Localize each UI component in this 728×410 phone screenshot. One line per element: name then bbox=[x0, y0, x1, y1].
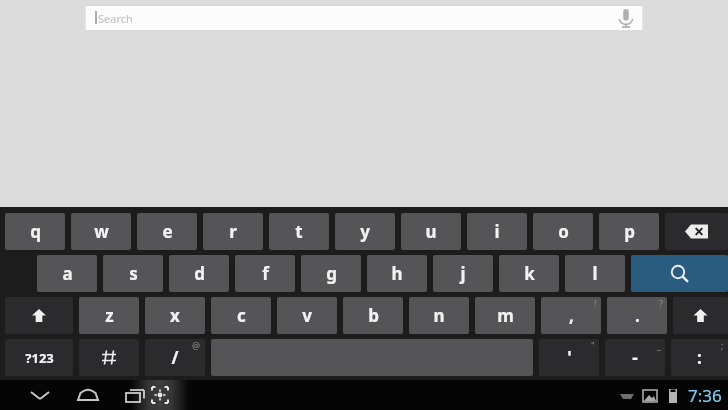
staticText: d bbox=[194, 262, 205, 285]
button[interactable]: a bbox=[37, 255, 97, 292]
button[interactable]: x bbox=[145, 297, 205, 334]
staticText: ! bbox=[594, 297, 597, 309]
button[interactable]: j bbox=[433, 255, 493, 292]
button[interactable]: @ bbox=[145, 339, 205, 376]
staticText: ? bbox=[659, 297, 663, 309]
button[interactable]: m bbox=[475, 297, 535, 334]
button[interactable]: z bbox=[79, 297, 139, 334]
staticText: k bbox=[524, 262, 535, 285]
staticText: q bbox=[30, 220, 41, 243]
button[interactable]: Search bbox=[85, 5, 643, 31]
staticText: , bbox=[569, 304, 574, 327]
staticText: 7:36 bbox=[688, 384, 722, 407]
staticText: : bbox=[697, 346, 702, 369]
staticText: j bbox=[460, 262, 466, 285]
button[interactable]: Shift bbox=[673, 297, 728, 334]
staticText: o bbox=[558, 220, 569, 243]
button[interactable]: s bbox=[103, 255, 163, 292]
staticText: v bbox=[302, 304, 312, 327]
staticText: n bbox=[433, 304, 445, 327]
button[interactable]: _ bbox=[605, 339, 665, 376]
button[interactable]: y bbox=[335, 213, 395, 250]
button[interactable]: Switch input method bbox=[131, 380, 189, 410]
staticText: p bbox=[624, 220, 635, 243]
button[interactable]: ! bbox=[541, 297, 601, 334]
button[interactable]: l bbox=[565, 255, 625, 292]
staticText: s bbox=[129, 262, 138, 285]
staticText: b bbox=[368, 304, 379, 327]
staticText: ; bbox=[721, 339, 724, 351]
staticText: . bbox=[635, 304, 640, 327]
button[interactable]: Shift bbox=[5, 297, 73, 334]
button[interactable]: u bbox=[401, 213, 461, 250]
button[interactable]: Voice search bbox=[609, 5, 643, 31]
button[interactable]: c bbox=[211, 297, 271, 334]
button[interactable]: g bbox=[301, 255, 361, 292]
button[interactable]: w bbox=[71, 213, 131, 250]
staticText: g bbox=[326, 262, 337, 285]
staticText: r bbox=[229, 220, 237, 243]
staticText: w bbox=[94, 220, 109, 243]
button[interactable]: k bbox=[499, 255, 559, 292]
button[interactable]: Search bbox=[631, 255, 728, 292]
button[interactable]: ?123 bbox=[5, 339, 73, 376]
button[interactable]: ; bbox=[671, 339, 728, 376]
staticText: m bbox=[497, 304, 514, 327]
staticText: ?123 bbox=[25, 349, 54, 367]
staticText: f bbox=[262, 262, 269, 285]
staticText: @ bbox=[192, 339, 201, 351]
button[interactable]: v bbox=[277, 297, 337, 334]
button[interactable]: Backspace bbox=[665, 213, 728, 250]
button[interactable]: q bbox=[5, 213, 65, 250]
staticText: _ bbox=[657, 339, 661, 351]
button[interactable]: p bbox=[599, 213, 659, 250]
staticText: a bbox=[62, 262, 73, 285]
staticText: t bbox=[295, 220, 303, 243]
button[interactable]: " bbox=[539, 339, 599, 376]
staticText: z bbox=[105, 304, 114, 327]
button[interactable]: Hide keyboard bbox=[14, 380, 66, 410]
button[interactable]: Input languages bbox=[79, 339, 139, 376]
button[interactable]: h bbox=[367, 255, 427, 292]
staticText: " bbox=[591, 339, 595, 351]
button[interactable]: r bbox=[203, 213, 263, 250]
button[interactable]: i bbox=[467, 213, 527, 250]
staticText: / bbox=[171, 346, 179, 369]
button[interactable]: e bbox=[137, 213, 197, 250]
button[interactable]: Home bbox=[62, 380, 114, 410]
staticText: l bbox=[592, 262, 598, 285]
staticText: h bbox=[391, 262, 403, 285]
staticText: u bbox=[425, 220, 437, 243]
staticText: - bbox=[632, 346, 638, 369]
button[interactable]: t bbox=[269, 213, 329, 250]
button[interactable]: Recent apps bbox=[110, 380, 162, 410]
staticText: y bbox=[360, 220, 370, 243]
staticText: x bbox=[170, 304, 180, 327]
staticText: ' bbox=[567, 346, 572, 369]
staticText: c bbox=[237, 304, 246, 327]
button[interactable]: f bbox=[235, 255, 295, 292]
staticText: Search bbox=[98, 11, 133, 26]
button[interactable]: ? bbox=[607, 297, 667, 334]
button[interactable]: b bbox=[343, 297, 403, 334]
staticText: i bbox=[494, 220, 500, 243]
button[interactable]: d bbox=[169, 255, 229, 292]
staticText: e bbox=[162, 220, 173, 243]
button[interactable]: o bbox=[533, 213, 593, 250]
button[interactable]: n bbox=[409, 297, 469, 334]
